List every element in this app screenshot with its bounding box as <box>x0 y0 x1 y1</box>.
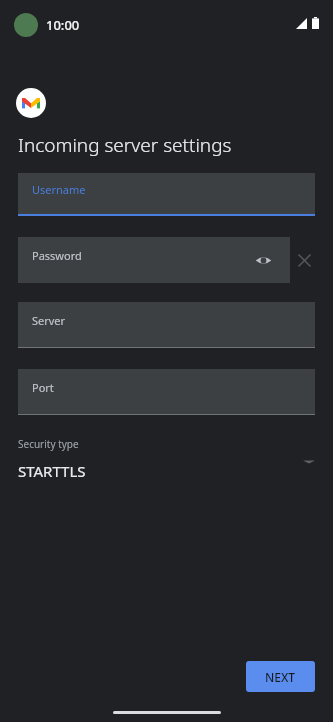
button[interactable]: Username <box>18 173 315 216</box>
staticText: 10:00 <box>46 16 80 34</box>
staticText: Username <box>32 182 86 197</box>
button[interactable]: Password <box>18 237 290 283</box>
button[interactable]: Port <box>18 369 315 415</box>
staticText: Incoming server settings <box>18 132 232 158</box>
staticText: Security type <box>18 437 79 451</box>
staticText: Server <box>32 313 66 328</box>
staticText: STARTTLS <box>18 461 86 481</box>
staticText: NEXT <box>265 669 296 685</box>
button[interactable]: Clear password <box>293 249 315 271</box>
other: Gmail <box>16 88 46 118</box>
staticText: Password <box>32 248 82 263</box>
staticText: Port <box>32 380 54 395</box>
button[interactable]: NEXT <box>246 661 315 692</box>
button[interactable]: Server <box>18 302 315 348</box>
button[interactable]: Security type <box>18 437 315 481</box>
button[interactable]: Show password <box>250 247 276 273</box>
